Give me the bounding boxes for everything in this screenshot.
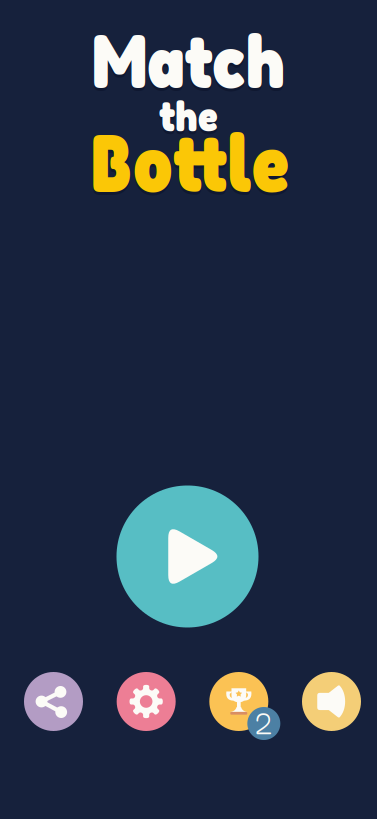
staticText: Bottle bbox=[88, 113, 289, 210]
staticText: Bottle bbox=[88, 116, 289, 213]
staticText: Match bbox=[91, 14, 285, 105]
button[interactable]: Settings bbox=[117, 672, 176, 731]
staticText: the bbox=[159, 90, 218, 141]
button[interactable]: Sound bbox=[302, 672, 361, 731]
button[interactable]: Share bbox=[24, 672, 83, 731]
button[interactable]: Achievements bbox=[209, 672, 268, 731]
staticText: 2 bbox=[255, 706, 273, 741]
button[interactable]: Play bbox=[116, 485, 258, 627]
staticText: Match bbox=[91, 17, 285, 108]
staticText: the bbox=[159, 93, 218, 144]
